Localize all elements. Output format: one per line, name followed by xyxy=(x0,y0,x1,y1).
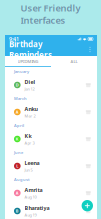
staticText: Amrita xyxy=(25,186,43,194)
button[interactable]: Add birthday xyxy=(82,200,93,211)
staticText: Jun 5 xyxy=(25,167,33,172)
staticText: UPCOMING xyxy=(17,59,38,64)
staticText: D xyxy=(16,82,19,88)
staticText: 9:41 xyxy=(9,35,19,43)
staticText: April xyxy=(14,123,24,128)
staticText: ALL xyxy=(70,59,77,64)
staticText: Bharatiya xyxy=(25,204,50,212)
staticText: B xyxy=(16,208,19,214)
button[interactable]: K xyxy=(5,130,97,148)
button[interactable]: A xyxy=(5,103,97,121)
button[interactable]: UPCOMING xyxy=(5,56,51,66)
staticText: Kk xyxy=(25,132,32,140)
button[interactable]: D xyxy=(5,76,97,94)
button[interactable]: A xyxy=(5,184,97,202)
staticText: Aug 10 xyxy=(25,194,37,199)
staticText: Jan 12 xyxy=(25,86,35,91)
staticText: June xyxy=(14,150,23,155)
staticText: August xyxy=(14,177,30,182)
button[interactable]: L xyxy=(5,157,97,175)
staticText: Mar 2 xyxy=(25,113,36,118)
button[interactable]: ALL xyxy=(51,56,97,66)
staticText: A xyxy=(16,109,19,115)
staticText: March xyxy=(14,96,27,101)
button[interactable]: B xyxy=(5,202,97,219)
staticText: Apr 3 xyxy=(25,140,35,145)
staticText: Aug 19 xyxy=(25,212,37,217)
staticText: Anku xyxy=(25,105,38,113)
staticText: User Friendly Interfaces xyxy=(20,2,80,26)
button[interactable]: More options xyxy=(86,44,94,54)
staticText: K xyxy=(16,136,19,142)
staticText: Leena xyxy=(25,159,40,167)
staticText: L xyxy=(16,163,18,169)
staticText: Diel xyxy=(25,78,36,86)
staticText: A xyxy=(16,190,19,196)
staticText: Birthday Reminders xyxy=(9,39,52,60)
staticText: January xyxy=(14,69,29,74)
